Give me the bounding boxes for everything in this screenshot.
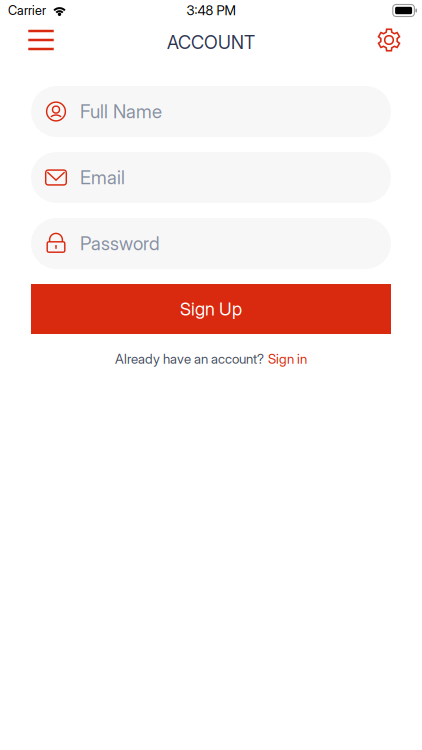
button[interactable]: Sign Up (31, 284, 391, 334)
staticText: Sign Up (180, 298, 242, 320)
button[interactable]: Already have an account? (31, 349, 391, 369)
button[interactable]: Email (31, 152, 391, 203)
staticText: Full Name (80, 100, 162, 123)
staticText: Carrier (8, 3, 46, 18)
staticText: 3:48 PM (186, 2, 235, 18)
button[interactable]: Password (31, 218, 391, 269)
staticText: Sign in (268, 351, 307, 367)
staticText: Already have an account? (115, 351, 264, 367)
staticText: ACCOUNT (167, 31, 255, 53)
staticText: Password (80, 232, 160, 255)
button[interactable]: Settings (371, 22, 407, 58)
staticText: Email (80, 166, 125, 189)
button[interactable]: Full Name (31, 86, 391, 137)
button[interactable]: Menu (23, 22, 59, 58)
